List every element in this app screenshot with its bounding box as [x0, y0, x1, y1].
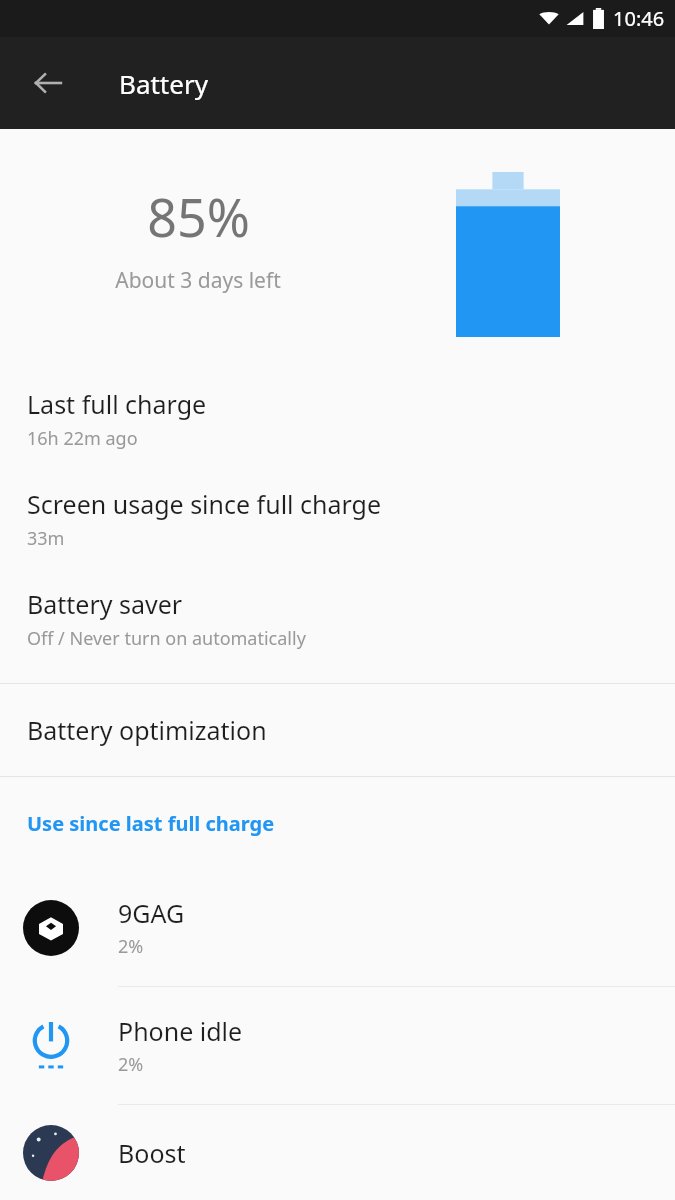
staticText: 2%	[118, 934, 144, 959]
staticText: Phone idle	[118, 1014, 243, 1048]
staticText: Screen usage since full charge	[27, 487, 382, 521]
staticText: Use since last full charge	[27, 810, 275, 837]
button[interactable]: Screen usage since full charge	[0, 471, 675, 571]
button[interactable]: Last full charge	[0, 371, 675, 471]
staticText: 10:46	[613, 5, 665, 32]
button[interactable]: Boost	[0, 1105, 675, 1200]
button[interactable]: Phone idle	[0, 987, 675, 1104]
staticText: Last full charge	[27, 387, 207, 421]
staticText: Battery	[119, 66, 208, 101]
staticText: Boost	[118, 1136, 186, 1170]
staticText: 9GAG	[118, 896, 185, 930]
staticText: Battery optimization	[27, 713, 267, 747]
staticText: 85%	[147, 181, 250, 252]
staticText: 2%	[118, 1052, 144, 1077]
staticText: 16h 22m ago	[27, 426, 138, 451]
button[interactable]: Back	[20, 55, 76, 111]
staticText: 33m	[27, 526, 65, 551]
staticText: Off / Never turn on automatically	[27, 626, 306, 651]
staticText: Battery saver	[27, 587, 183, 621]
staticText: About 3 days left	[115, 266, 281, 295]
button[interactable]: 9GAG	[0, 869, 675, 986]
button[interactable]: Battery saver	[0, 571, 675, 671]
button[interactable]: Battery optimization	[0, 684, 675, 776]
